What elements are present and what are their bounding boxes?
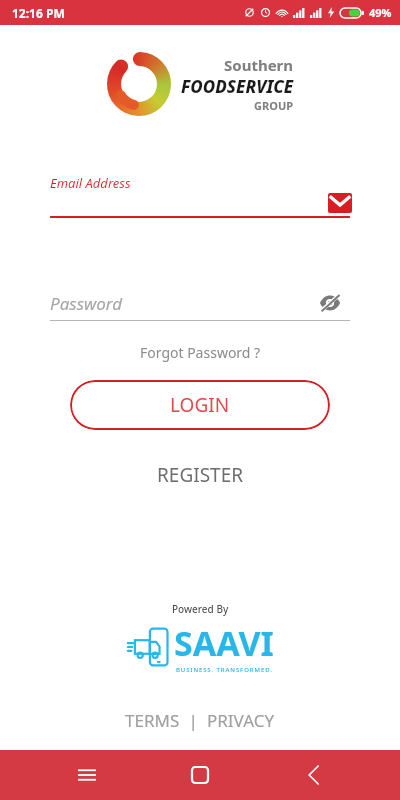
- staticText: LOGIN: [170, 392, 230, 418]
- button[interactable]: LOGIN: [70, 380, 330, 430]
- button[interactable]: [50, 288, 310, 318]
- staticText: Powered By: [172, 602, 229, 616]
- button[interactable]: Forgot Password ?: [130, 340, 271, 365]
- button[interactable]: Back: [287, 750, 341, 800]
- staticText: 12:16 PM: [12, 5, 65, 21]
- button[interactable]: Recent apps: [60, 750, 114, 800]
- staticText: Southern: [224, 55, 294, 75]
- button[interactable]: Show password: [316, 292, 344, 314]
- staticText: PRIVACY: [207, 709, 275, 732]
- staticText: FOODSERVICE: [181, 75, 294, 98]
- staticText: GROUP: [254, 98, 294, 113]
- button[interactable]: [50, 190, 350, 218]
- staticText: SAAVI: [174, 620, 274, 666]
- staticText: BUSINESS. TRANSFORMED.: [176, 666, 273, 674]
- staticText: 49%: [369, 5, 392, 20]
- button[interactable]: PRIVACY: [203, 706, 279, 735]
- staticText: Forgot Password ?: [140, 343, 261, 362]
- button[interactable]: TERMS: [121, 706, 184, 735]
- staticText: Password: [50, 292, 123, 315]
- staticText: |: [184, 709, 203, 732]
- button[interactable]: Home: [173, 750, 227, 800]
- staticText: REGISTER: [157, 462, 244, 488]
- staticText: TERMS: [125, 709, 180, 732]
- staticText: Email Address: [50, 174, 131, 192]
- button[interactable]: Email: [328, 193, 352, 213]
- button[interactable]: REGISTER: [145, 458, 256, 492]
